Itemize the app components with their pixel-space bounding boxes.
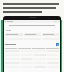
button[interactable] [42, 33, 59, 36]
button[interactable]: Add [56, 43, 59, 46]
button[interactable] [5, 33, 23, 36]
button[interactable] [5, 54, 59, 56]
button[interactable] [5, 66, 59, 68]
button[interactable] [5, 62, 59, 64]
button[interactable] [5, 58, 59, 60]
button[interactable] [24, 33, 41, 36]
button[interactable] [5, 50, 59, 52]
